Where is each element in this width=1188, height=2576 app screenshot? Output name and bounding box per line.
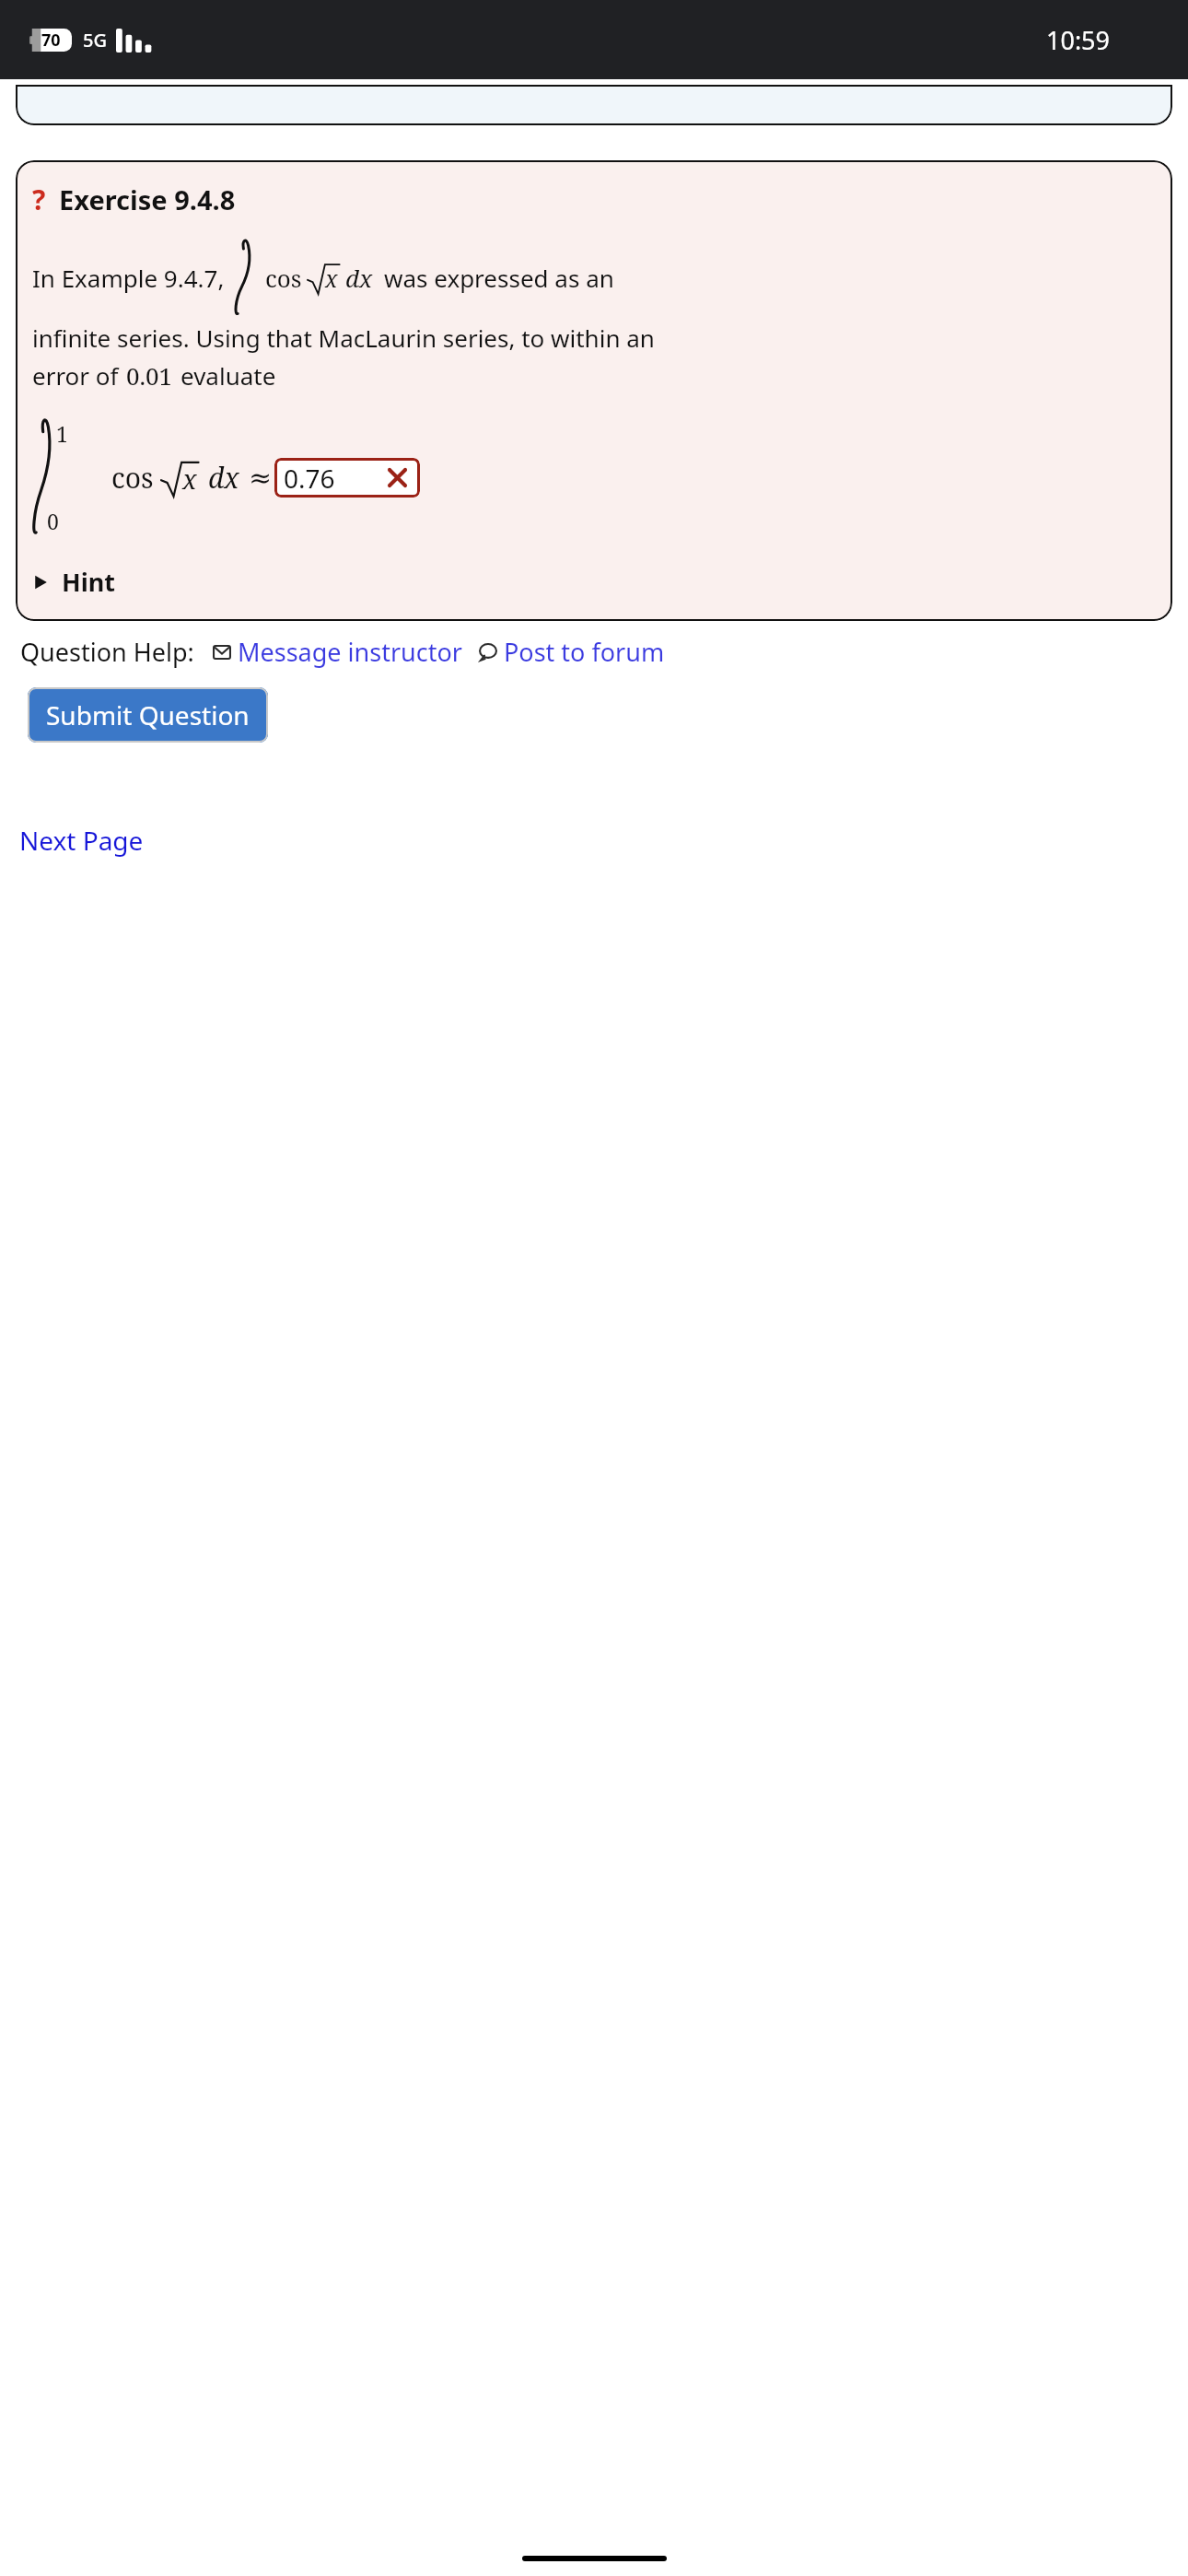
staticText: x: [182, 462, 197, 498]
staticText: cos: [111, 459, 154, 497]
staticText: x: [325, 263, 338, 295]
staticText: 0: [47, 507, 59, 535]
button[interactable]: Hint: [32, 565, 115, 599]
staticText: Next Page: [19, 823, 144, 858]
button[interactable]: Next Page: [16, 819, 147, 861]
other: Message instructor: [213, 645, 231, 660]
button[interactable]: Message instructor: [213, 635, 462, 669]
staticText: 5G: [83, 28, 107, 53]
staticText: Post to forum: [504, 635, 665, 669]
staticText: Submit Question: [46, 697, 250, 732]
staticText: 70: [41, 29, 61, 52]
staticText: Hint: [62, 565, 115, 599]
button[interactable]: Post to forum: [479, 635, 665, 669]
staticText: evaluate: [181, 359, 276, 392]
staticText: ≈: [249, 462, 273, 494]
other: Post to forum: [479, 643, 497, 661]
staticText: dx: [345, 262, 373, 294]
staticText: dx: [208, 459, 239, 497]
staticText: 0.01: [126, 359, 173, 392]
staticText: infinite series. Using that MacLaurin se…: [32, 322, 655, 354]
staticText: error of: [32, 359, 119, 392]
staticText: cos: [265, 262, 302, 294]
button[interactable]: 0.76: [274, 458, 420, 498]
staticText: In Example 9.4.7,: [32, 262, 225, 294]
staticText: 10:59: [1046, 23, 1111, 57]
staticText: 0.76: [284, 461, 335, 496]
staticText: 1: [56, 419, 68, 448]
button[interactable]: Submit Question: [28, 687, 268, 743]
staticText: ?: [32, 181, 46, 218]
staticText: Exercise 9.4.8: [59, 181, 236, 217]
staticText: was expressed as an: [384, 262, 614, 294]
staticText: Question Help:: [20, 635, 194, 669]
staticText: Message instructor: [238, 635, 462, 669]
